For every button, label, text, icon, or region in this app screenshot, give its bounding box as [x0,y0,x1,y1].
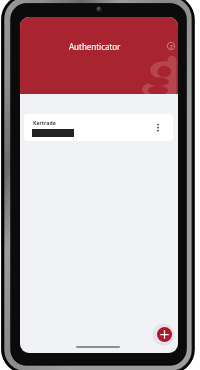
staticText: Kertrade [33,119,56,126]
staticText: ? [170,43,173,50]
button[interactable]: Help [165,40,177,52]
button[interactable]: More options [152,123,164,135]
button[interactable]: Kertrade [24,114,173,141]
button[interactable]: Add account [157,327,172,342]
staticText: Authenticator [69,41,121,52]
